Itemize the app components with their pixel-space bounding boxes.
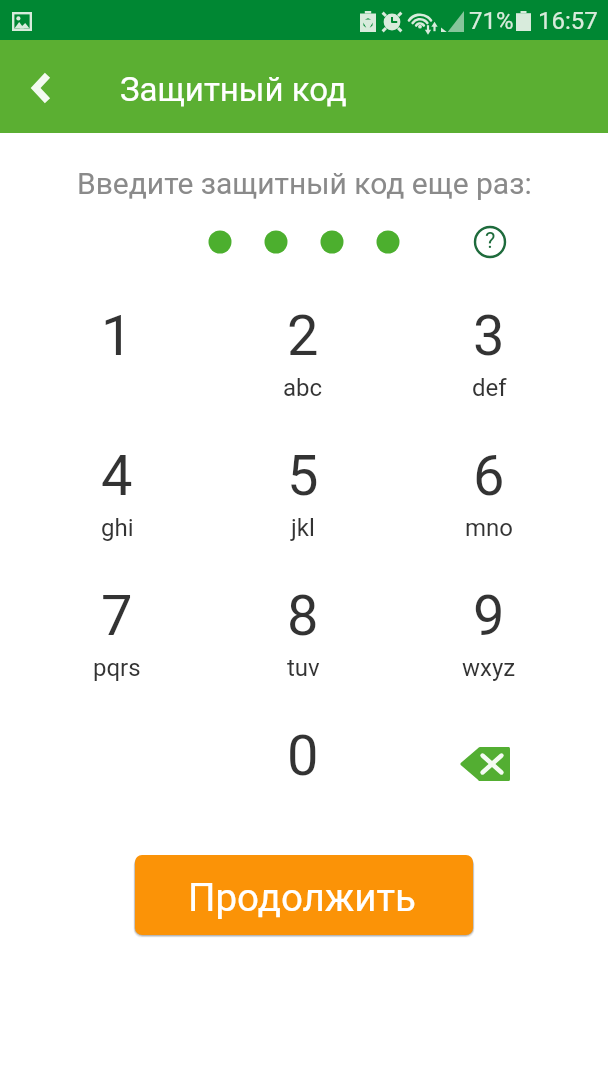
staticText: 4 (101, 443, 133, 509)
staticText: ghi (101, 514, 134, 542)
staticText: 3 (473, 303, 505, 369)
staticText: tuv (287, 654, 320, 682)
staticText: 2 (287, 303, 319, 369)
staticText: 9 (473, 583, 505, 649)
staticText: Защитный код (120, 70, 347, 109)
staticText: 6 (473, 443, 505, 509)
staticText: 5 (287, 443, 319, 509)
button[interactable]: 1 (24, 304, 210, 444)
staticText: mno (465, 514, 513, 542)
button[interactable]: 3 (396, 304, 582, 444)
button[interactable]: Back (0, 40, 80, 133)
button[interactable]: 9 (396, 584, 582, 724)
staticText: def (472, 374, 507, 402)
staticText: 1 (101, 303, 133, 369)
button[interactable]: 2 (210, 304, 396, 444)
staticText: wxyz (462, 654, 516, 682)
button[interactable]: 7 (24, 584, 210, 724)
staticText: pqrs (93, 654, 141, 682)
button[interactable]: 4 (24, 444, 210, 584)
button[interactable]: 5 (210, 444, 396, 584)
staticText: ? (485, 228, 496, 254)
staticText: jkl (291, 514, 315, 542)
staticText: Продолжить (188, 875, 416, 920)
button[interactable]: 0 (210, 724, 396, 864)
staticText: 71% (469, 7, 514, 35)
staticText: 8 (287, 583, 319, 649)
staticText: Введите защитный код еще раз: (77, 166, 532, 201)
staticText: abc (283, 374, 323, 402)
button[interactable]: 6 (396, 444, 582, 584)
button[interactable]: Продолжить (135, 855, 473, 935)
staticText: 0 (287, 723, 319, 789)
button[interactable]: Help (468, 220, 512, 264)
staticText: 16:57 (538, 7, 598, 35)
button[interactable]: 8 (210, 584, 396, 724)
button[interactable]: Backspace (396, 724, 582, 864)
staticText: 7 (101, 583, 133, 649)
